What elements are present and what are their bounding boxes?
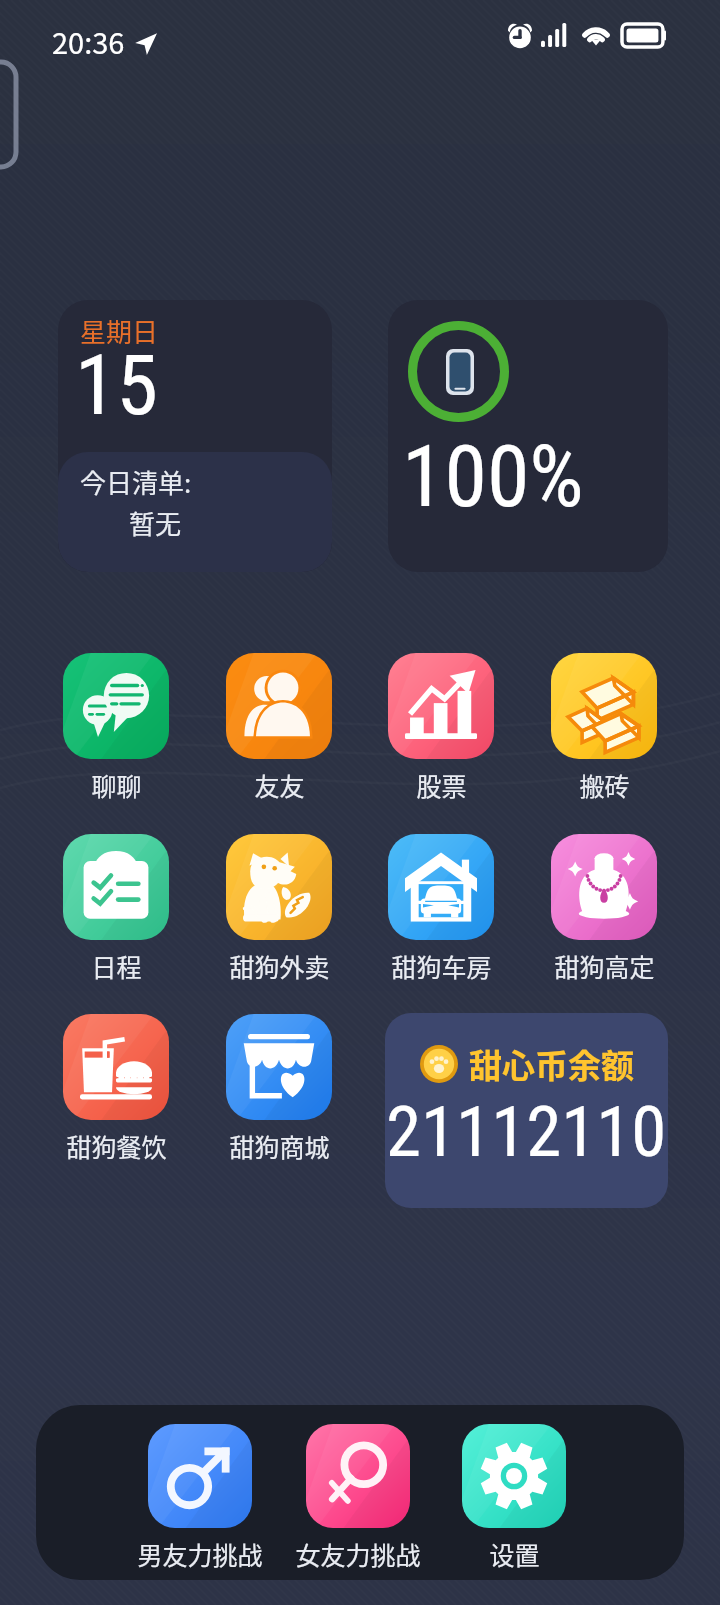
button[interactable]: 甜狗车房 (369, 834, 513, 984)
staticText: 甜心币余额 (469, 1040, 634, 1088)
button[interactable]: 搬砖 (532, 653, 676, 803)
staticText: 聊聊 (91, 767, 142, 803)
button[interactable]: 甜狗外卖 (207, 834, 351, 984)
staticText: 甜狗商城 (229, 1128, 330, 1164)
staticText: 20:36 (52, 20, 125, 62)
staticText: 今日清单: (80, 463, 192, 501)
staticText: 股票 (416, 767, 467, 803)
button[interactable]: 甜狗餐饮 (44, 1014, 188, 1164)
staticText: 甜狗餐饮 (66, 1128, 167, 1164)
button[interactable]: 设置 (442, 1424, 586, 1572)
staticText: 搬砖 (579, 767, 630, 803)
staticText: 设置 (489, 1536, 540, 1572)
staticText: 15 (75, 336, 158, 434)
staticText: 暂无 (129, 504, 182, 542)
staticText: 友友 (254, 767, 305, 803)
button[interactable]: 友友 (207, 653, 351, 803)
button[interactable]: 股票 (369, 653, 513, 803)
button[interactable]: 聊聊 (44, 653, 188, 803)
staticText: 女友力挑战 (295, 1536, 421, 1572)
staticText: 男友力挑战 (137, 1536, 263, 1572)
staticText: 星期日 (80, 312, 159, 350)
button[interactable]: 甜心币余额 (385, 1013, 668, 1208)
staticText: 甜狗外卖 (229, 948, 330, 984)
button[interactable]: 男友力挑战 (128, 1424, 272, 1572)
button[interactable]: 星期日 (58, 300, 332, 572)
button[interactable]: 日程 (44, 834, 188, 984)
button[interactable]: 女友力挑战 (286, 1424, 430, 1572)
staticText: 100% (402, 426, 584, 527)
button[interactable]: 甜狗高定 (532, 834, 676, 984)
button[interactable]: 甜狗商城 (207, 1014, 351, 1164)
staticText: 日程 (91, 948, 142, 984)
staticText: 21112110 (386, 1090, 667, 1173)
button[interactable]: 100% (388, 300, 668, 572)
staticText: 甜狗高定 (554, 948, 655, 984)
staticText: 甜狗车房 (391, 948, 492, 984)
